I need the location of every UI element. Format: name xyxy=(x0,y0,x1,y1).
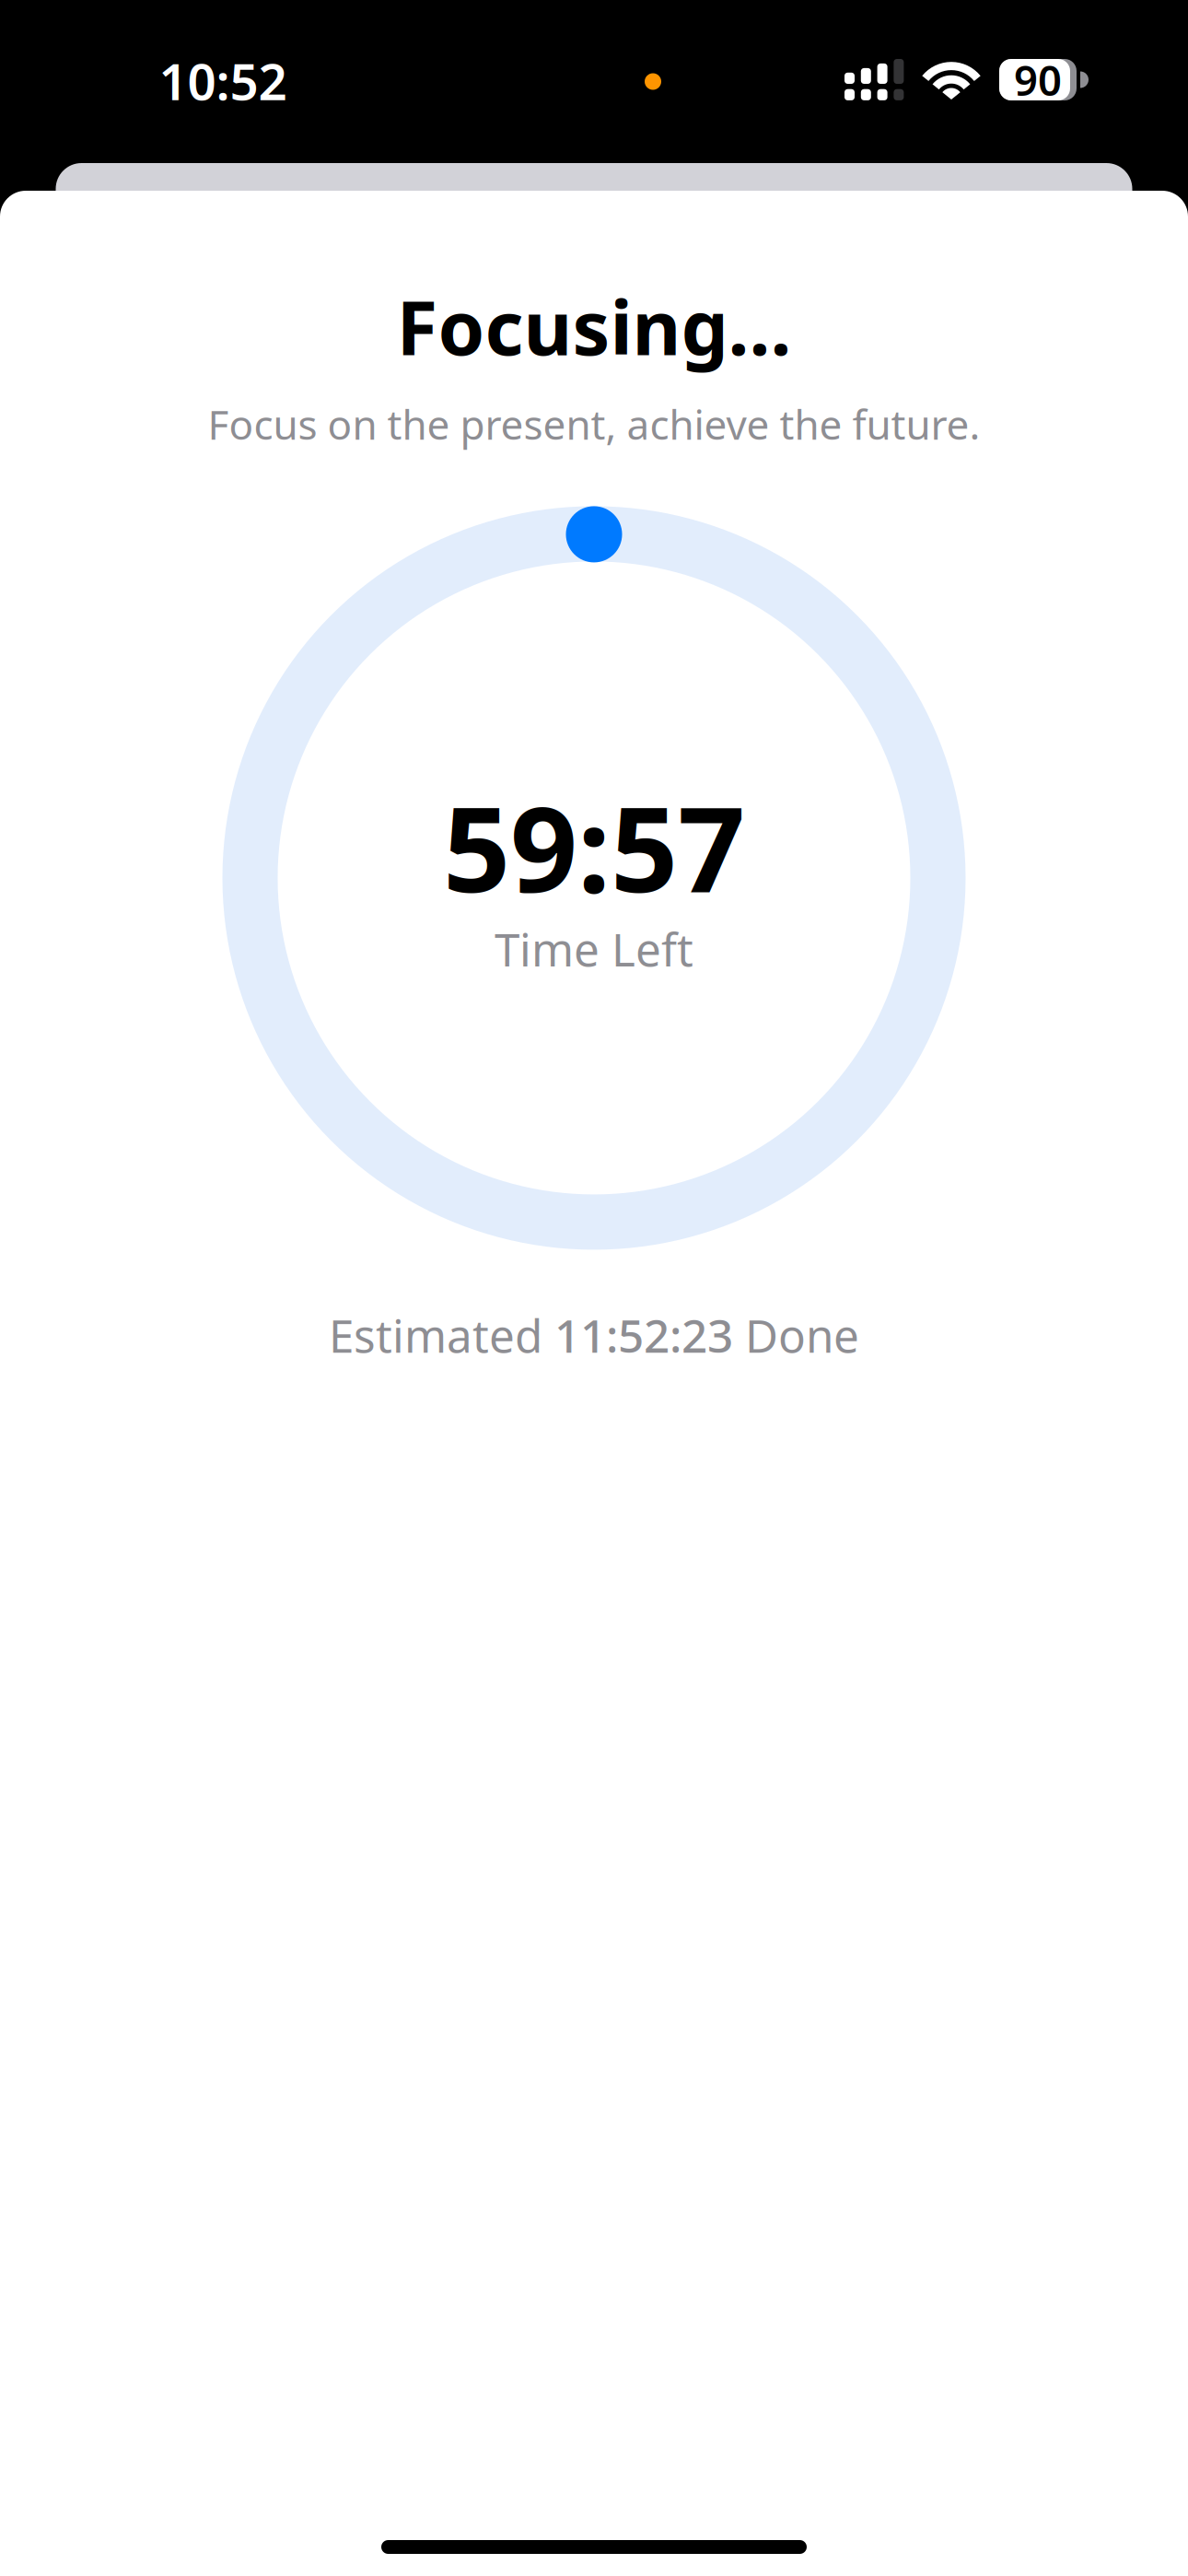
staticText: 59:57 xyxy=(443,768,745,925)
staticText: 90 xyxy=(1014,52,1062,107)
staticText: Estimated 11:52:23 Done xyxy=(329,1305,859,1365)
staticText: Focusing... xyxy=(396,276,792,376)
button[interactable]: 59:57 time left, pause focus session xyxy=(222,506,966,1250)
staticText: Focus on the present, achieve the future… xyxy=(208,397,980,451)
staticText: 10:52 xyxy=(159,47,287,114)
staticText: Time Left xyxy=(495,919,693,979)
